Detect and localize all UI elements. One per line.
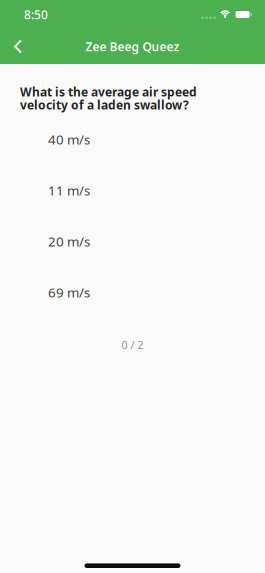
- staticText: 69 m/s: [48, 283, 90, 301]
- button[interactable]: Back: [0, 29, 36, 64]
- staticText: 11 m/s: [48, 181, 90, 199]
- staticText: Zee Beeg Queez: [85, 38, 179, 54]
- button[interactable]: 40 m/s: [0, 114, 265, 165]
- staticText: 20 m/s: [48, 232, 90, 250]
- button[interactable]: 20 m/s: [0, 216, 265, 267]
- button[interactable]: 11 m/s: [0, 165, 265, 216]
- button[interactable]: 69 m/s: [0, 267, 265, 318]
- staticText: What is the average air speed velocity o…: [20, 84, 197, 113]
- staticText: 0 / 2: [121, 338, 143, 352]
- staticText: 8:50: [24, 6, 48, 22]
- staticText: 40 m/s: [48, 130, 90, 148]
